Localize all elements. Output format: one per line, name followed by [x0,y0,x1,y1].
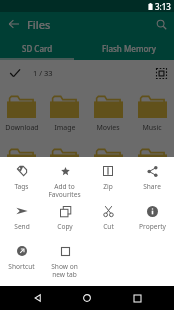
button[interactable]: SD Card [0,36,74,60]
staticText: Shortcut [8,262,35,271]
button[interactable]: Movies [86,95,130,133]
staticText: Property [139,222,166,231]
button[interactable]: Recent apps [125,286,149,310]
staticText: Movies [96,123,120,133]
staticText: SD Card [22,43,53,54]
staticText: Download [5,123,39,133]
staticText: Send [14,222,30,231]
button[interactable]: Home [75,286,99,310]
staticText: 1 / 33 [33,68,53,78]
button[interactable]: Property [130,197,174,237]
button[interactable]: Download [0,95,43,133]
button[interactable]: Android [130,148,174,186]
button[interactable]: Video [86,148,130,186]
button[interactable]: Share [130,157,174,197]
button[interactable]: Select all [148,60,174,86]
staticText: Image [54,123,76,133]
button[interactable]: Shortcut [0,237,43,277]
staticText: Share [143,182,161,191]
button[interactable]: Zip [86,157,130,197]
button[interactable]: Add to Favourites [43,157,86,197]
staticText: Files [27,17,51,32]
button[interactable]: Tags [0,157,43,197]
button[interactable]: Search [148,12,174,36]
button[interactable]: Back [0,12,27,36]
staticText: Video [99,176,118,186]
button[interactable]: Cut [86,197,130,237]
staticText: Pictures [8,176,35,186]
button[interactable]: Ringtones [43,148,86,186]
staticText: Zip [103,182,113,191]
staticText: Cut [103,222,114,231]
button[interactable]: Copy [43,197,86,237]
staticText: 3:13 [155,1,171,12]
staticText: Music [142,123,162,133]
button[interactable]: Back [26,286,50,310]
button[interactable]: Image [43,95,86,133]
button[interactable]: Deselect [0,60,29,86]
button[interactable]: Show on new tab [43,237,86,277]
staticText: Show on new tab [51,262,78,277]
staticText: Android [139,176,166,186]
staticText: Copy [57,222,73,231]
staticText: Tags [14,182,29,191]
staticText: Ringtones [48,176,82,186]
button[interactable]: Music [130,95,174,133]
staticText: Flash Memory [102,43,156,54]
button[interactable]: Pictures [0,148,43,186]
button[interactable]: Flash Memory [83,36,174,60]
button[interactable]: Send [0,197,43,237]
staticText: Add to Favourites [48,182,81,197]
